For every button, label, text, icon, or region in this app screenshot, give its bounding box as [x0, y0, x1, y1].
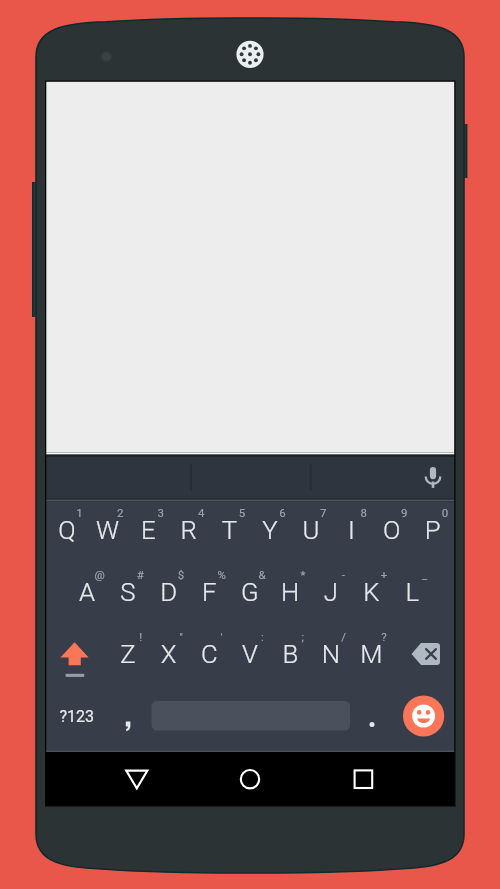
- button[interactable]: F: [189, 562, 230, 623]
- button[interactable]: G: [229, 562, 270, 623]
- button[interactable]: U: [290, 501, 331, 562]
- button[interactable]: P: [412, 501, 453, 562]
- button[interactable]: D: [148, 562, 189, 623]
- button[interactable]: A: [67, 562, 108, 623]
- button[interactable]: H: [270, 562, 311, 623]
- button[interactable]: Emoji: [394, 684, 453, 751]
- button[interactable]: Period: [350, 684, 394, 751]
- button[interactable]: N: [310, 623, 351, 684]
- button[interactable]: Suggestion 1: [47, 454, 191, 499]
- button[interactable]: Shift: [47, 623, 107, 684]
- button[interactable]: S: [107, 562, 148, 623]
- button[interactable]: Recent apps: [318, 752, 408, 806]
- button[interactable]: Suggestion 2: [192, 454, 310, 499]
- button[interactable]: W: [87, 501, 128, 562]
- button[interactable]: K: [351, 562, 392, 623]
- button[interactable]: Backspace: [393, 623, 453, 684]
- button[interactable]: C: [189, 623, 230, 684]
- button[interactable]: Voice input: [394, 454, 453, 499]
- button[interactable]: J: [310, 562, 351, 623]
- button[interactable]: Suggestion 3: [311, 454, 453, 499]
- button[interactable]: Y: [250, 501, 291, 562]
- button[interactable]: T: [209, 501, 250, 562]
- button[interactable]: Symbols: [47, 684, 107, 751]
- button[interactable]: Comma: [107, 684, 151, 751]
- button[interactable]: O: [371, 501, 412, 562]
- button[interactable]: V: [229, 623, 270, 684]
- button[interactable]: R: [168, 501, 209, 562]
- button[interactable]: Home: [205, 752, 295, 806]
- button[interactable]: Z: [107, 623, 148, 684]
- button[interactable]: E: [128, 501, 169, 562]
- button[interactable]: L: [392, 562, 433, 623]
- button[interactable]: M: [351, 623, 392, 684]
- button[interactable]: Back: [92, 752, 182, 806]
- button[interactable]: X: [148, 623, 189, 684]
- button[interactable]: B: [270, 623, 311, 684]
- button[interactable]: Q: [47, 501, 88, 562]
- button[interactable]: I: [331, 501, 372, 562]
- button[interactable]: Space: [151, 684, 350, 751]
